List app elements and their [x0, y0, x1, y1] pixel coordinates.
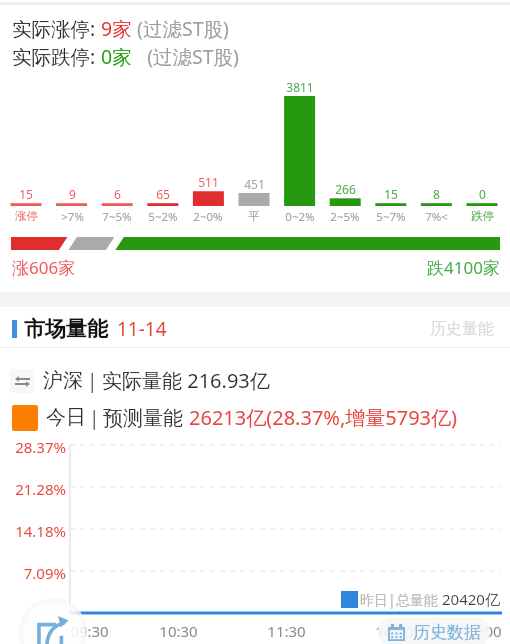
staticText: 15: [19, 186, 33, 202]
staticText: 昨日|总量能: [360, 590, 438, 609]
staticText: 今日: [46, 405, 86, 430]
staticText: 涨停: [15, 209, 38, 223]
staticText: 6: [114, 186, 121, 202]
staticText: 涨606家: [12, 256, 76, 279]
staticText: (过滤ST股): [132, 15, 229, 42]
staticText: 实际跌停:: [12, 43, 101, 70]
staticText: 2~5%: [330, 209, 360, 225]
staticText: 3811: [286, 79, 314, 95]
staticText: |: [87, 368, 98, 394]
staticText: 28.37%: [15, 437, 66, 457]
staticText: 266: [335, 181, 356, 197]
staticText: 14.18%: [15, 521, 66, 541]
staticText: 15:00: [463, 621, 502, 641]
staticText: 预测量能: [103, 404, 189, 431]
staticText: 市场量能: [24, 316, 108, 342]
staticText: 9: [69, 186, 76, 202]
staticText: 0家: [101, 43, 132, 70]
staticText: 7.09%: [23, 563, 66, 583]
staticText: 0~2%: [285, 209, 315, 225]
staticText: 5~7%: [376, 209, 406, 225]
staticText: 14:00: [375, 621, 414, 641]
staticText: 2~0%: [193, 209, 223, 225]
button[interactable]: 历史量能: [426, 315, 498, 343]
staticText: 511: [198, 174, 219, 190]
staticText: 9家: [101, 15, 132, 42]
staticText: 实际量能 216.93亿: [102, 367, 270, 394]
staticText: 20420亿: [442, 589, 500, 609]
button[interactable]: Share: [19, 598, 87, 644]
staticText: 实际涨停:: [12, 15, 101, 42]
staticText: 21.28%: [15, 479, 66, 499]
staticText: 451: [244, 176, 265, 192]
staticText: 11:30: [267, 621, 306, 641]
button[interactable]: 历史数据: [378, 617, 490, 644]
staticText: 11-14: [117, 316, 167, 342]
staticText: 65: [156, 186, 170, 202]
staticText: 10:30: [159, 621, 198, 641]
staticText: 跌4100家: [0, 256, 500, 279]
staticText: >7%: [61, 209, 84, 225]
staticText: 7%<: [425, 209, 448, 225]
staticText: |: [89, 405, 100, 431]
staticText: 沪深: [43, 368, 83, 393]
staticText: 7~5%: [102, 209, 132, 225]
staticText: 跌停: [471, 209, 494, 223]
staticText: 历史数据: [413, 622, 481, 643]
staticText: 15: [384, 186, 398, 202]
staticText: 历史量能: [430, 319, 494, 339]
staticText: 平: [248, 209, 260, 223]
staticText: 09:30: [70, 621, 109, 641]
staticText: 8: [433, 186, 440, 202]
staticText: 5~2%: [148, 209, 178, 225]
staticText: (过滤ST股): [132, 43, 239, 70]
staticText: 26213亿(28.37%,增量5793亿): [189, 404, 458, 431]
staticText: 0: [479, 186, 486, 202]
